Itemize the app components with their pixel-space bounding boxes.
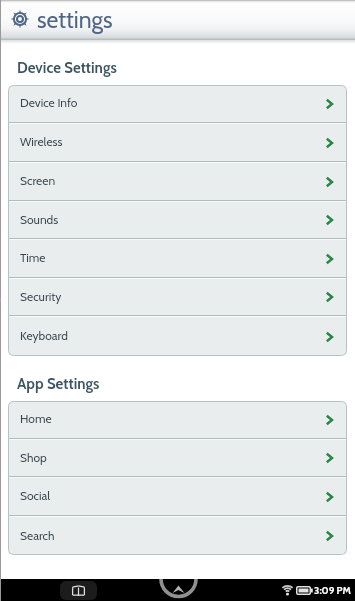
staticText: Search (20, 528, 55, 543)
staticText: Wireless (20, 134, 63, 149)
staticText: Device Info (20, 95, 78, 110)
staticText: Device Settings (17, 59, 117, 77)
staticText: settings (37, 6, 113, 34)
button[interactable]: Recent apps (60, 581, 97, 600)
staticText: Screen (20, 173, 56, 188)
other: Wi-Fi signal (280, 584, 295, 596)
staticText: Social (20, 488, 51, 503)
button[interactable]: Search (8, 517, 347, 555)
button[interactable]: Keyboard (8, 317, 347, 356)
button[interactable]: Sounds (8, 202, 347, 238)
staticText: Sounds (20, 212, 59, 227)
staticText: Security (20, 289, 62, 304)
button[interactable]: Security (8, 279, 347, 315)
button[interactable]: Home (8, 401, 347, 438)
staticText: App Settings (17, 375, 100, 393)
button[interactable]: Show navigation (0, 579, 355, 601)
staticText: Time (20, 250, 46, 265)
staticText: Home (20, 411, 52, 426)
staticText: Keyboard (20, 328, 68, 343)
staticText: Shop (20, 450, 47, 465)
button[interactable]: Wireless (8, 124, 347, 161)
staticText: 3:09 PM (314, 584, 351, 596)
button[interactable]: Device Info (8, 85, 347, 122)
button[interactable]: Social (8, 478, 347, 515)
button[interactable]: Time (8, 240, 347, 277)
button[interactable]: Shop (8, 440, 347, 476)
button[interactable]: Screen (8, 163, 347, 200)
